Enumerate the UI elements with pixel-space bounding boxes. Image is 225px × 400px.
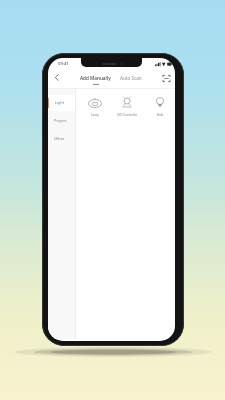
button[interactable] — [48, 95, 75, 111]
button[interactable]: LED Controller — [113, 93, 141, 119]
staticText: Bulb — [157, 113, 164, 117]
button[interactable] — [162, 74, 171, 83]
staticText: Lamp — [91, 113, 99, 117]
button[interactable]: Bulb — [146, 93, 174, 119]
button[interactable] — [48, 111, 75, 127]
button[interactable]: Lamp — [81, 93, 109, 119]
staticText: Auto Scan — [120, 75, 142, 81]
staticText: 09:41 — [58, 61, 69, 67]
button[interactable]: Add Manually — [78, 72, 113, 83]
staticText: Other — [54, 136, 65, 141]
staticText: LED Controller — [117, 113, 138, 117]
button[interactable]: Auto Scan — [117, 72, 145, 83]
staticText: Light — [55, 100, 65, 105]
staticText: Add Manually — [80, 75, 111, 81]
button[interactable] — [52, 72, 62, 83]
staticText: Project — [54, 118, 67, 123]
button[interactable] — [48, 128, 75, 144]
